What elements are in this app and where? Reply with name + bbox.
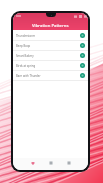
button[interactable]: Library bbox=[42, 158, 60, 168]
staticText: Birds at spring bbox=[16, 64, 36, 68]
staticText: Thunderstorm bbox=[16, 34, 36, 38]
button[interactable]: Barn with Thunder bbox=[13, 71, 88, 80]
staticText: Barn with Thunder bbox=[16, 74, 41, 78]
button[interactable]: Settings bbox=[60, 158, 78, 168]
button[interactable]: Patterns bbox=[23, 158, 42, 168]
button[interactable]: Thunderstorm bbox=[13, 31, 88, 40]
staticText: Smart Bakery bbox=[16, 54, 34, 58]
staticText: Vibration Patterns bbox=[32, 22, 69, 28]
staticText: Beep Boop bbox=[16, 44, 31, 48]
button[interactable]: Birds at spring bbox=[13, 61, 88, 70]
button[interactable]: Beep Boop bbox=[13, 41, 88, 50]
button[interactable]: Smart Bakery bbox=[13, 51, 88, 60]
